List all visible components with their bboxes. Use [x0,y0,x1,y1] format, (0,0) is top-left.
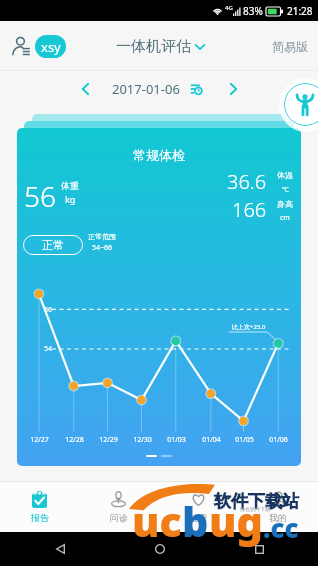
staticText: cm [280,213,290,223]
staticText: uc [132,493,182,549]
staticText: 01/06 [269,435,288,445]
button[interactable]: 健康 [158,481,238,532]
button[interactable]: Next day [220,76,246,102]
staticText: ℃ [282,185,289,195]
button[interactable]: Back [45,534,75,564]
staticText: 软件下载站 [214,491,299,512]
staticText: 54 [44,344,53,354]
staticText: kg [65,193,76,205]
button[interactable]: 报告 [0,481,79,532]
button[interactable]: Recents [244,534,274,564]
staticText: 问诊 [110,512,128,523]
staticText: xsy [41,38,61,56]
button[interactable]: Previous day [72,76,98,102]
staticText: b [182,493,209,549]
staticText: 12/30 [133,435,152,445]
staticText: 体重 [61,180,79,191]
button[interactable]: 我的 [238,481,318,532]
button[interactable]: 一体机评估 [112,33,209,60]
staticText: 66 [44,305,53,315]
staticText: 12/28 [65,435,84,445]
staticText: 正常范围 [88,232,116,241]
staticText: 21:28 [287,4,313,18]
staticText: 4G [225,4,233,12]
button[interactable]: 问诊 [79,481,158,532]
staticText: 01/05 [235,435,254,445]
staticText: ug [209,493,263,549]
button[interactable]: 常规体检 [17,128,301,466]
staticText: 绿色软件下载 [240,506,270,512]
staticText: 体温 [277,170,293,180]
staticText: .cc [263,510,299,545]
staticText: 健康 [189,512,207,523]
staticText: 比上次+23.0 [232,323,266,331]
button[interactable]: Contacts [7,31,35,61]
staticText: 2017-01-06 [112,80,180,98]
button[interactable]: Home [145,534,175,564]
staticText: 正常 [42,238,64,252]
staticText: 简易版 [272,39,308,54]
staticText: 166 [232,196,267,223]
button[interactable]: 简易版 [262,33,318,60]
staticText: 01/04 [202,435,221,445]
staticText: 身高 [277,199,293,209]
button[interactable]: History [186,79,206,99]
button[interactable]: xsy [35,35,66,58]
staticText: 常规体检 [133,147,185,163]
staticText: 一体机评估 [116,37,191,56]
staticText: 01/03 [167,435,186,445]
staticText: 12/29 [99,435,118,445]
button[interactable]: 正常 [23,235,83,255]
staticText: 56 [24,177,56,215]
staticText: 83% [243,4,263,18]
button[interactable]: Start measurement [284,83,318,126]
staticText: 36.6 [227,168,267,195]
staticText: 12/27 [30,435,49,445]
staticText: 报告 [31,512,49,523]
staticText: 我的 [269,512,287,523]
staticText: 54~66 [92,243,113,253]
